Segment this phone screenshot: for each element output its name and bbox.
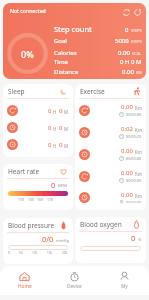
staticText: Not connected — [10, 7, 46, 14]
staticText: Km — [135, 171, 142, 177]
button[interactable]: My — [99, 266, 149, 295]
staticText: 0.00 — [121, 147, 133, 155]
staticText: 0.00 — [121, 103, 133, 111]
staticText: 0 — [48, 141, 52, 149]
staticText: 00:00:00 — [126, 178, 142, 183]
button[interactable]: Blood oxygen — [75, 217, 146, 263]
staticText: 0 — [8, 251, 10, 255]
staticText: BPM — [58, 183, 68, 189]
staticText: 0 — [59, 107, 63, 115]
button[interactable]: Home — [0, 266, 49, 295]
staticText: 00:00:00 — [126, 156, 142, 161]
staticText: KM — [136, 70, 142, 75]
staticText: 0% — [21, 48, 34, 60]
staticText: Step count — [54, 24, 92, 34]
staticText: 0.00 — [121, 191, 133, 199]
staticText: Km — [135, 149, 142, 155]
staticText: 0 — [59, 141, 63, 149]
staticText: STEPS — [131, 39, 142, 44]
button[interactable]: Blood pressure — [3, 218, 73, 264]
staticText: Calories — [54, 49, 77, 57]
staticText: 130 — [28, 197, 35, 202]
button[interactable]: Step goal progress — [7, 33, 48, 74]
staticText: 0 — [59, 124, 63, 132]
staticText: Heart rate — [8, 167, 40, 176]
staticText: 0.00 — [118, 49, 130, 57]
staticText: H — [53, 109, 57, 115]
staticText: Exercise — [80, 87, 105, 96]
staticText: 110 — [18, 197, 25, 202]
staticText: Time — [54, 58, 68, 66]
staticText: 0 — [131, 233, 136, 243]
staticText: Km — [135, 127, 142, 133]
staticText: 0 — [48, 124, 52, 132]
staticText: 0 H 0 M — [120, 58, 142, 66]
staticText: Goal — [54, 37, 67, 45]
staticText: 5000 — [115, 37, 129, 45]
button[interactable]: Heart rate — [3, 164, 73, 210]
staticText: H — [53, 143, 57, 149]
staticText: M — [64, 126, 69, 132]
staticText: Blood pressure — [8, 221, 55, 230]
staticText: 00:00:00 — [126, 200, 142, 203]
staticText: 0:02 — [121, 125, 133, 133]
staticText: 00:00:23 — [126, 134, 142, 139]
staticText: 0 — [48, 107, 52, 115]
staticText: H — [53, 126, 57, 132]
staticText: % — [138, 237, 142, 242]
staticText: 200 — [62, 251, 68, 255]
staticText: 50 — [19, 251, 23, 255]
staticText: 0 — [51, 180, 56, 190]
staticText: M — [64, 143, 69, 149]
staticText: Device — [67, 283, 82, 290]
button[interactable]: Sync — [122, 8, 131, 17]
staticText: 0.00 — [122, 68, 134, 76]
button[interactable]: Sleep — [3, 84, 73, 157]
staticText: 100 — [32, 251, 38, 255]
button[interactable]: Device — [49, 266, 99, 295]
staticText: 150 — [37, 197, 44, 202]
staticText: 150 — [47, 251, 53, 255]
staticText: Blood oxygen — [80, 220, 122, 229]
staticText: 170 — [47, 197, 54, 202]
staticText: Sleep — [8, 87, 25, 96]
staticText: 0/0 — [42, 234, 54, 244]
staticText: STEPS — [131, 28, 142, 33]
staticText: My — [121, 283, 128, 290]
staticText: Km — [135, 105, 142, 111]
staticText: Distance — [54, 68, 79, 76]
staticText: mmHg — [56, 238, 69, 243]
staticText: Km — [135, 193, 142, 199]
button[interactable]: Refresh — [133, 8, 142, 17]
staticText: Home — [18, 283, 32, 290]
staticText: M — [64, 109, 69, 115]
staticText: 00:00:00 — [126, 112, 142, 117]
button[interactable]: Exercise — [75, 84, 146, 210]
staticText: KCAL — [132, 51, 142, 56]
staticText: 0.00 — [121, 169, 133, 177]
staticText: 0 — [125, 26, 129, 34]
